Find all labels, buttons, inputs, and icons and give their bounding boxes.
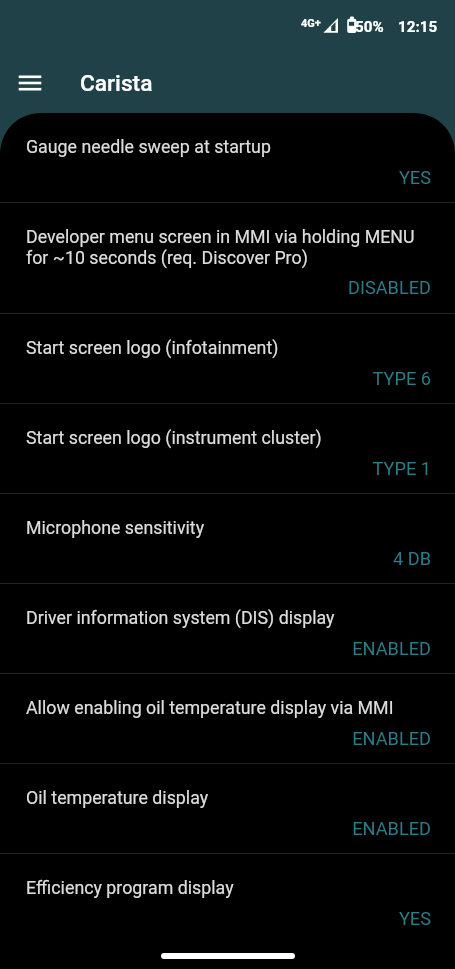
button[interactable]: Developer menu screen in MMI via holding… bbox=[0, 203, 455, 314]
staticText: ENABLED bbox=[26, 728, 431, 749]
staticText: TYPE 1 bbox=[26, 458, 431, 479]
button[interactable]: Gauge needle sweep at startup bbox=[0, 113, 455, 203]
staticText: Driver information system (DIS) display bbox=[26, 607, 335, 628]
staticText: Oil temperature display bbox=[26, 787, 209, 808]
staticText: 12:15 bbox=[398, 18, 438, 36]
staticText: 4G+ bbox=[301, 17, 321, 30]
staticText: Efficiency program display bbox=[26, 877, 234, 898]
button[interactable]: Efficiency program display bbox=[0, 854, 455, 944]
button[interactable]: Oil temperature display bbox=[0, 764, 455, 854]
staticText: DISABLED bbox=[26, 277, 431, 298]
staticText: Gauge needle sweep at startup bbox=[26, 136, 271, 157]
button[interactable]: Allow enabling oil temperature display v… bbox=[0, 674, 455, 764]
staticText: Allow enabling oil temperature display v… bbox=[26, 697, 394, 718]
staticText: YES bbox=[26, 908, 431, 929]
staticText: Developer menu screen in MMI via holding… bbox=[26, 226, 415, 247]
staticText: Start screen logo (infotainment) bbox=[26, 337, 279, 358]
button[interactable]: Start screen logo (infotainment) bbox=[0, 314, 455, 404]
staticText: Microphone sensitivity bbox=[26, 517, 205, 538]
staticText: Carista bbox=[80, 70, 153, 97]
staticText: Start screen logo (instrument cluster) bbox=[26, 427, 322, 448]
staticText: TYPE 6 bbox=[26, 368, 431, 389]
staticText: YES bbox=[26, 167, 431, 188]
button[interactable]: Open navigation menu bbox=[8, 61, 52, 105]
button[interactable]: Microphone sensitivity bbox=[0, 494, 455, 584]
button[interactable]: Driver information system (DIS) display bbox=[0, 584, 455, 674]
button[interactable]: Start screen logo (instrument cluster) bbox=[0, 404, 455, 494]
staticText: ENABLED bbox=[26, 818, 431, 839]
staticText: ENABLED bbox=[26, 638, 431, 659]
staticText: 50% bbox=[355, 18, 384, 36]
staticText: for ~10 seconds (req. Discover Pro) bbox=[26, 247, 308, 268]
staticText: 4 DB bbox=[26, 548, 431, 569]
